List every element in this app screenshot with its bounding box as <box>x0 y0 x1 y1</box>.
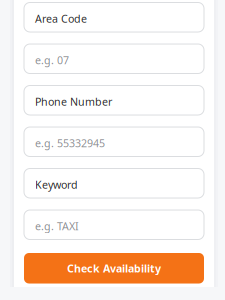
button[interactable]: Phone Number <box>24 85 204 115</box>
button[interactable]: Area Code <box>24 2 204 32</box>
staticText: e.g. 55332945 <box>35 136 105 150</box>
button[interactable]: e.g. 07 <box>24 44 204 73</box>
button[interactable]: Keyword <box>24 168 204 198</box>
button[interactable]: e.g. 55332945 <box>24 127 204 156</box>
staticText: e.g. TAXI <box>35 219 79 233</box>
staticText: Check Availability <box>67 261 161 275</box>
staticText: Phone Number <box>35 95 112 109</box>
staticText: Keyword <box>35 178 78 192</box>
staticText: e.g. 07 <box>35 53 69 67</box>
staticText: Area Code <box>35 12 87 26</box>
button[interactable]: e.g. TAXI <box>24 210 204 239</box>
button[interactable]: Check Availability <box>24 253 204 283</box>
